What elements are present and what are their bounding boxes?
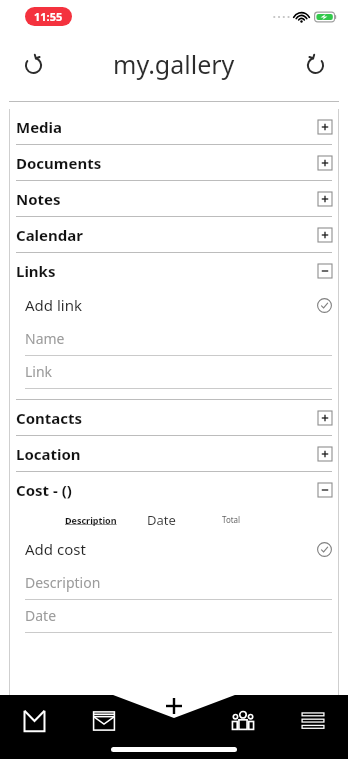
staticText: Calendar bbox=[16, 225, 83, 245]
button[interactable]: Date bbox=[25, 606, 332, 633]
staticText: Links bbox=[16, 261, 56, 281]
button[interactable]: Inbox bbox=[0, 700, 69, 742]
staticText: my.gallery bbox=[113, 47, 235, 81]
button[interactable]: Links bbox=[16, 253, 332, 288]
staticText: Name bbox=[25, 329, 65, 348]
button[interactable]: Documents bbox=[16, 145, 332, 180]
button[interactable]: Redo bbox=[11, 42, 55, 86]
button[interactable]: Name bbox=[25, 329, 332, 356]
button[interactable]: Contacts bbox=[208, 700, 278, 742]
button[interactable]: Cost - () bbox=[16, 472, 332, 507]
button[interactable]: Link bbox=[25, 362, 332, 389]
button[interactable]: Collapse section bbox=[318, 483, 332, 497]
other: Confirm bbox=[317, 542, 332, 557]
staticText: Date bbox=[25, 606, 57, 625]
staticText: Add link bbox=[25, 295, 82, 315]
button[interactable]: Calendar bbox=[16, 217, 332, 252]
button[interactable]: Media bbox=[16, 109, 332, 144]
staticText: Total bbox=[222, 514, 241, 525]
staticText: Contacts bbox=[16, 408, 83, 428]
button[interactable]: Expand section bbox=[318, 228, 332, 242]
staticText: Cost - () bbox=[16, 480, 72, 500]
staticText: Notes bbox=[16, 189, 61, 209]
button[interactable]: Notes bbox=[16, 181, 332, 216]
staticText: 11:55 bbox=[34, 9, 63, 24]
staticText: Date bbox=[147, 511, 176, 529]
button[interactable]: Expand section bbox=[318, 192, 332, 206]
staticText: Add cost bbox=[25, 539, 86, 559]
staticText: Description bbox=[65, 514, 117, 526]
staticText: Link bbox=[25, 362, 53, 381]
button[interactable]: Collapse section bbox=[318, 264, 332, 278]
staticText: Media bbox=[16, 117, 63, 137]
other: Confirm bbox=[317, 298, 332, 313]
button[interactable]: Add link bbox=[25, 288, 332, 322]
button[interactable]: Add cost bbox=[25, 532, 332, 566]
button[interactable]: Expand section bbox=[318, 120, 332, 134]
button[interactable]: Contacts bbox=[16, 400, 332, 435]
button[interactable]: Expand section bbox=[318, 156, 332, 170]
button[interactable]: Mail bbox=[69, 700, 138, 742]
button[interactable]: Add bbox=[158, 690, 190, 722]
button[interactable]: Description bbox=[25, 573, 332, 600]
button[interactable]: Expand section bbox=[318, 447, 332, 461]
staticText: Description bbox=[25, 573, 101, 592]
button[interactable]: Undo bbox=[293, 42, 337, 86]
staticText: Documents bbox=[16, 153, 102, 173]
button[interactable]: Expand section bbox=[318, 411, 332, 425]
button[interactable]: Menu bbox=[278, 700, 348, 742]
button[interactable]: Location bbox=[16, 436, 332, 471]
staticText: Location bbox=[16, 444, 81, 464]
